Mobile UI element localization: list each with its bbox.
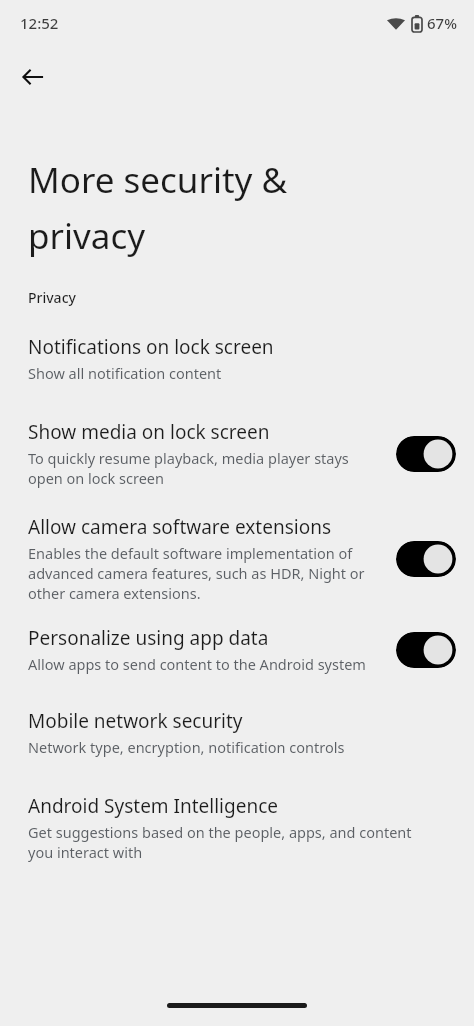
staticText: 67% [427, 13, 457, 33]
button[interactable]: Show media on lock screen [0, 419, 474, 488]
staticText: Allow camera software extensions [28, 514, 332, 540]
staticText: Get suggestions based on the people, app… [28, 822, 432, 862]
button[interactable]: Personalize using app data [0, 625, 474, 674]
staticText: Mobile network security [28, 708, 243, 734]
staticText: 12:52 [20, 13, 59, 33]
button[interactable]: Android System Intelligence [0, 793, 474, 862]
button[interactable]: Toggle [396, 541, 456, 577]
button[interactable]: Back [9, 53, 57, 101]
button[interactable]: Toggle [396, 632, 456, 668]
staticText: Notifications on lock screen [28, 334, 274, 360]
staticText: More security & privacy [28, 156, 288, 259]
staticText: Show media on lock screen [28, 419, 270, 445]
staticText: Show all notification content [28, 363, 222, 383]
staticText: Allow apps to send content to the Androi… [28, 654, 366, 674]
staticText: Personalize using app data [28, 625, 269, 651]
staticText: Android System Intelligence [28, 793, 279, 819]
button[interactable]: Toggle [396, 436, 456, 472]
button[interactable]: Allow camera software extensions [0, 514, 474, 603]
staticText: Enables the default software implementat… [28, 543, 382, 603]
button[interactable]: Mobile network security [0, 708, 474, 757]
staticText: Network type, encryption, notification c… [28, 737, 345, 757]
staticText: Privacy [28, 288, 76, 307]
button[interactable]: Notifications on lock screen [0, 334, 474, 383]
staticText: To quickly resume playback, media player… [28, 448, 382, 488]
